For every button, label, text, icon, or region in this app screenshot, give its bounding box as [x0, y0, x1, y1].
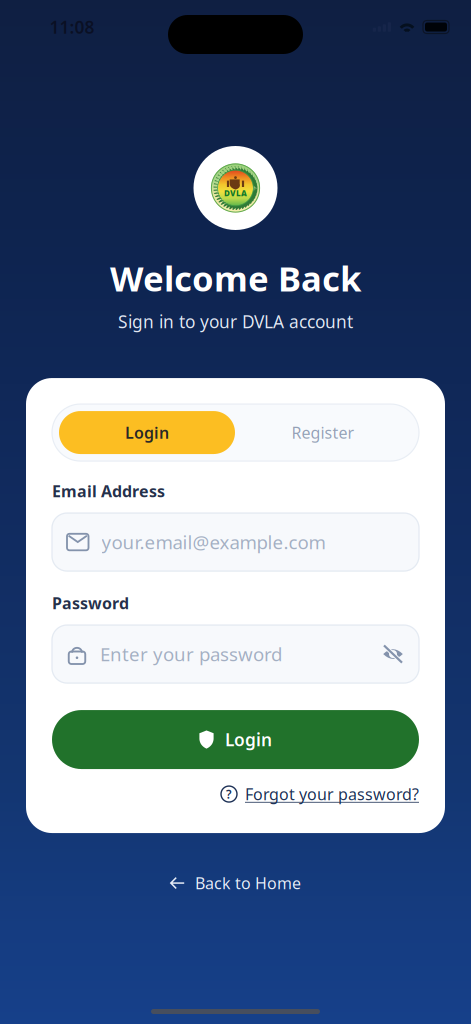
staticText: your.email@example.com	[101, 530, 325, 554]
staticText: Register	[291, 422, 354, 443]
staticText: Login	[125, 422, 169, 443]
staticText: Back to Home	[195, 872, 301, 894]
staticText: Email Address	[52, 480, 165, 502]
staticText: Password	[52, 592, 129, 614]
button[interactable]: Back to Home	[154, 871, 317, 895]
staticText: ?	[226, 786, 232, 802]
staticText: 11:08	[49, 15, 94, 38]
button[interactable]: Login	[52, 710, 419, 769]
button[interactable]: ?	[221, 783, 419, 805]
staticText: Forgot your password?	[245, 783, 419, 805]
button[interactable]: Login	[59, 411, 235, 454]
button[interactable]: Register	[235, 411, 411, 454]
button[interactable]: Show password	[382, 644, 404, 664]
staticText: Sign in to your DVLA account	[118, 310, 353, 333]
staticText: DVLA	[224, 188, 247, 198]
staticText: Enter your password	[100, 642, 282, 666]
staticText: Login	[225, 728, 272, 751]
staticText: Welcome Back	[110, 255, 361, 301]
